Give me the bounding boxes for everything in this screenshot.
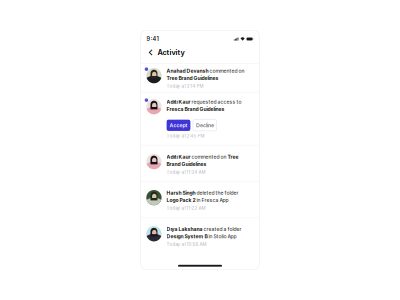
button[interactable]: Aditi Kaur commented on Tree Brand Guide… <box>140 146 259 182</box>
button[interactable]: Activity <box>140 41 259 63</box>
staticText: Activity <box>158 48 185 57</box>
staticText: Accept <box>169 122 187 128</box>
staticText: Today at 2:45 PM <box>167 133 205 139</box>
staticText: Aditi Kaur commented on Tree Brand Guide… <box>167 154 239 167</box>
staticText: Aditi Kaur requested access to Fresca Br… <box>167 99 242 112</box>
button[interactable]: Decline <box>193 120 217 131</box>
staticText: Decline <box>196 122 214 128</box>
button[interactable]: Diya Lakshana created a folder Design Sy… <box>140 218 259 254</box>
staticText: Today at 11:34 AM <box>167 169 206 175</box>
staticText: Harsh Singh deleted the folder Logo Pack… <box>167 190 239 203</box>
button[interactable]: Harsh Singh deleted the folder Logo Pack… <box>140 182 259 218</box>
button[interactable]: Aditi Kaur requested access to Fresca Br… <box>140 92 259 145</box>
staticText: Diya Lakshana created a folder Design Sy… <box>167 226 242 239</box>
staticText: Today at 11:22 AM <box>167 205 206 211</box>
staticText: Today at 3:14 PM <box>167 83 204 89</box>
button[interactable]: Accept <box>167 120 190 131</box>
staticText: Today at 10:56 AM <box>167 242 207 247</box>
staticText: Anahad Devansh commented on Tree Brand G… <box>167 68 245 81</box>
button[interactable]: Anahad Devansh commented on Tree Brand G… <box>140 64 259 92</box>
staticText: 9:41 <box>146 36 158 42</box>
